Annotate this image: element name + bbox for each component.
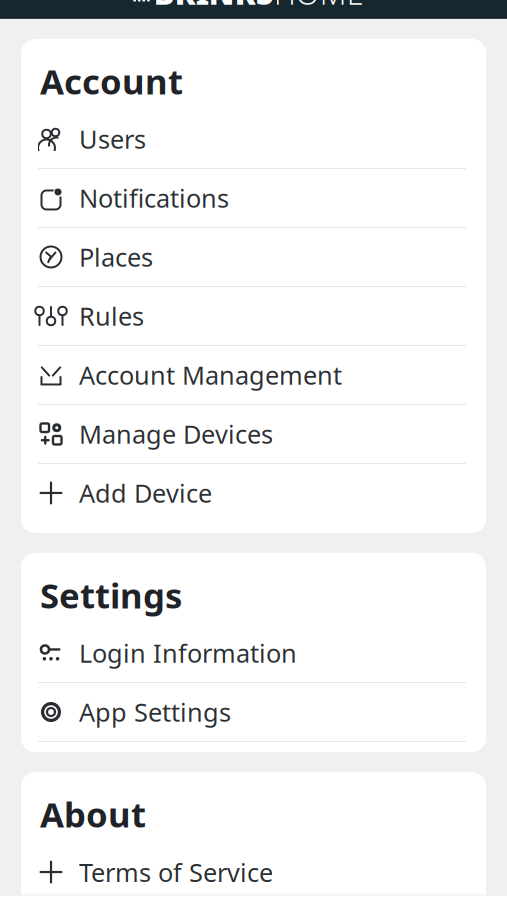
staticText: Account [40, 58, 183, 104]
staticText: Account Management [79, 358, 342, 392]
staticText: Add Device [79, 476, 212, 510]
staticText: Users [79, 122, 146, 156]
staticText: Places [79, 240, 153, 274]
staticText: Notifications [79, 181, 229, 215]
staticText: Settings [40, 572, 182, 618]
staticText: Manage Devices [79, 417, 273, 451]
button[interactable]: Login Information [21, 624, 486, 683]
staticText: Login Information [79, 636, 297, 670]
button[interactable]: Places [21, 228, 486, 287]
staticText: Terms of Service [79, 855, 273, 889]
staticText: About [40, 791, 146, 837]
button[interactable]: Rules [21, 287, 486, 346]
button[interactable]: Add Device [21, 464, 486, 523]
staticText: BRINKS [154, 0, 274, 13]
button[interactable]: Notifications [21, 169, 486, 228]
staticText: Rules [79, 299, 144, 333]
button[interactable]: Account Management [21, 346, 486, 405]
button[interactable]: Manage Devices [21, 405, 486, 464]
button[interactable]: Terms of Service [21, 843, 486, 900]
staticText: HOME [274, 0, 364, 13]
button[interactable]: Users [21, 110, 486, 169]
button[interactable]: App Settings [21, 683, 486, 742]
staticText: App Settings [79, 695, 231, 729]
